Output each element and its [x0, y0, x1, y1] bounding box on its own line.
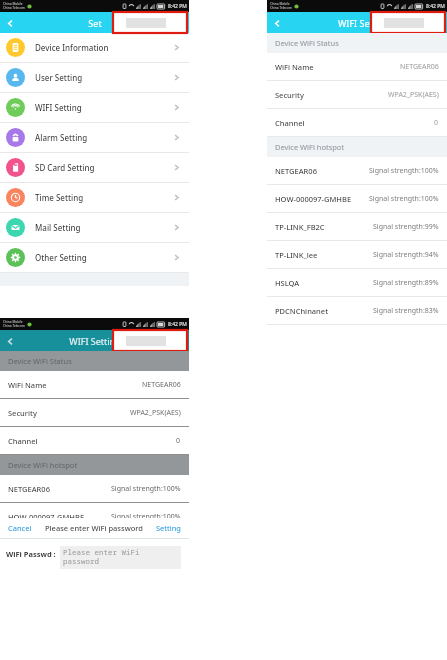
- button[interactable]: Mail Setting: [0, 213, 189, 243]
- staticText: Signal strength:100%: [111, 512, 181, 522]
- staticText: Cancel: [8, 523, 32, 533]
- staticText: Signal strength:94%: [373, 250, 439, 260]
- staticText: Time Setting: [35, 192, 84, 203]
- button[interactable]: Time Setting: [0, 183, 189, 213]
- staticText: NETGEAR06: [275, 166, 317, 176]
- button[interactable]: User Setting: [0, 63, 189, 93]
- staticText: SD Card Setting: [35, 162, 95, 173]
- button[interactable]: Security: [267, 81, 447, 109]
- staticText: WPA2_PSK(AES): [388, 90, 439, 100]
- staticText: Please enter WiFi password: [63, 547, 140, 566]
- button[interactable]: HSLQA: [267, 269, 447, 297]
- staticText: HOW-000097-GMHBE: [8, 512, 85, 522]
- staticText: Device WiFi Status: [275, 38, 339, 48]
- staticText: 8:42 PM: [426, 3, 445, 10]
- staticText: Channel: [8, 436, 38, 446]
- staticText: HSLQA: [275, 278, 300, 288]
- staticText: China Mobile: [3, 320, 23, 324]
- button[interactable]: Device Information: [0, 33, 189, 63]
- staticText: Other Setting: [35, 252, 87, 263]
- button[interactable]: Please enter WiFi password: [60, 546, 181, 569]
- staticText: Alarm Setting: [35, 132, 88, 143]
- staticText: NETGEAR06: [8, 484, 50, 494]
- button[interactable]: Other Setting: [0, 243, 189, 273]
- staticText: Device WiFi hotspot: [8, 460, 78, 470]
- button[interactable]: WIFI Setting: [0, 93, 189, 123]
- button[interactable]: HOW-000097-GMHBE: [267, 185, 447, 213]
- button[interactable]: NETGEAR06: [0, 475, 189, 503]
- staticText: 8:42 PM: [168, 321, 187, 328]
- staticText: PDCNChinanet: [275, 306, 329, 316]
- staticText: Signal strength:100%: [111, 484, 181, 494]
- button[interactable]: TP-LINK_FB2C: [267, 213, 447, 241]
- staticText: NETGEAR06: [142, 380, 181, 390]
- staticText: WIFI Sett: [338, 17, 376, 29]
- button[interactable]: WiFi Name: [0, 371, 189, 399]
- staticText: Signal strength:99%: [373, 222, 439, 232]
- staticText: Security: [8, 408, 37, 418]
- staticText: 0: [434, 118, 439, 128]
- staticText: Device WiFi Status: [8, 356, 72, 366]
- button[interactable]: Alarm Setting: [0, 123, 189, 153]
- staticText: WiFi Passwd :: [6, 549, 56, 559]
- button[interactable]: Channel: [267, 109, 447, 137]
- button[interactable]: Channel: [0, 427, 189, 455]
- button[interactable]: Back: [0, 331, 20, 351]
- staticText: NETGEAR06: [400, 62, 439, 72]
- button[interactable]: SD Card Setting: [0, 153, 189, 183]
- button[interactable]: Setting: [154, 523, 183, 533]
- button[interactable]: PDCNChinanet: [267, 297, 447, 325]
- staticText: Signal strength:83%: [373, 306, 439, 316]
- staticText: TP-LINK_lee: [275, 250, 318, 260]
- staticText: China Telecom: [270, 6, 292, 10]
- button[interactable]: HOW-000097-GMHBE: [0, 503, 189, 531]
- staticText: Mail Setting: [35, 222, 81, 233]
- button[interactable]: Back: [0, 13, 20, 33]
- staticText: Security: [275, 90, 304, 100]
- button[interactable]: WiFi Name: [267, 53, 447, 81]
- button[interactable]: NETGEAR06: [267, 157, 447, 185]
- button[interactable]: TP-LINK_lee: [267, 241, 447, 269]
- staticText: WIFI Setting: [35, 102, 82, 113]
- staticText: WiFi Name: [275, 62, 314, 72]
- staticText: Please enter WiFi password: [45, 523, 143, 533]
- button[interactable]: Back: [267, 13, 287, 33]
- staticText: Device Information: [35, 42, 109, 53]
- staticText: China Mobile: [3, 2, 23, 6]
- staticText: 0: [176, 436, 181, 446]
- staticText: Signal strength:89%: [373, 278, 439, 288]
- button[interactable]: Security: [0, 399, 189, 427]
- staticText: WPA2_PSK(AES): [130, 408, 181, 418]
- staticText: WiFi Name: [8, 380, 47, 390]
- staticText: WIFI Setting: [69, 335, 121, 347]
- staticText: TP-LINK_FB2C: [275, 222, 325, 232]
- staticText: Device WiFi hotspot: [275, 142, 345, 152]
- staticText: China Telecom: [3, 6, 25, 10]
- staticText: 8:42 PM: [168, 3, 187, 10]
- staticText: Signal strength:100%: [369, 194, 439, 204]
- staticText: Signal strength:100%: [369, 166, 439, 176]
- staticText: Set: [88, 17, 102, 29]
- staticText: User Setting: [35, 72, 83, 83]
- staticText: Channel: [275, 118, 305, 128]
- staticText: HOW-000097-GMHBE: [275, 194, 352, 204]
- staticText: Setting: [156, 523, 181, 533]
- staticText: China Telecom: [3, 324, 25, 328]
- staticText: China Mobile: [270, 2, 290, 6]
- button[interactable]: Cancel: [6, 523, 34, 533]
